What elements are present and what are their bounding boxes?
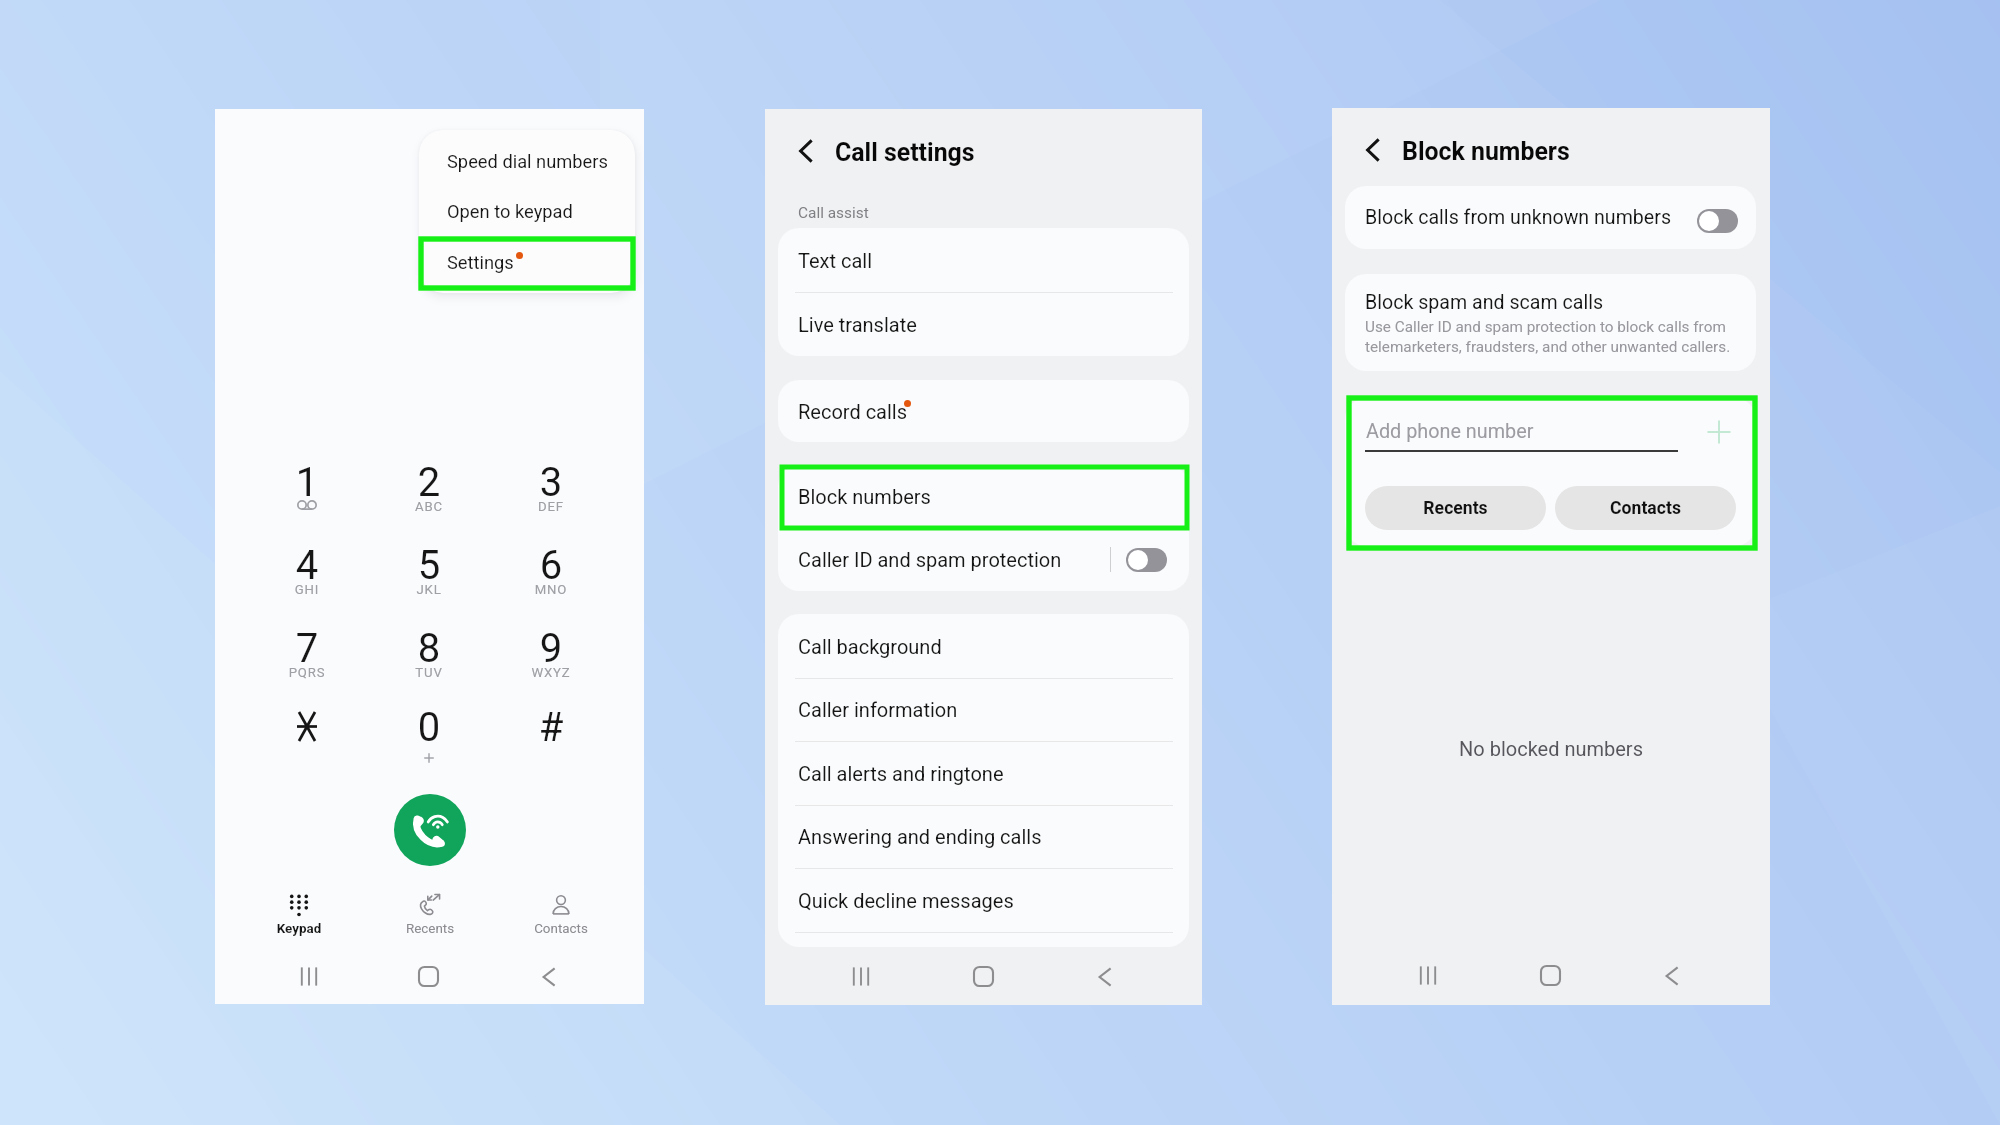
button[interactable]: Block numbers xyxy=(778,465,1189,528)
button[interactable]: Dial 0 xyxy=(373,688,485,764)
staticText: Open to keypad xyxy=(447,201,573,222)
button[interactable]: Dial 3 xyxy=(495,443,607,519)
button[interactable]: Dial 7 xyxy=(251,609,363,685)
button[interactable]: Keypad xyxy=(239,881,359,939)
button[interactable]: Record calls xyxy=(778,380,1189,442)
staticText: 0 xyxy=(384,704,474,751)
button[interactable]: Settings xyxy=(419,230,635,292)
staticText: 2 xyxy=(384,459,474,506)
button[interactable]: Text call xyxy=(778,228,1189,292)
staticText: Add phone number xyxy=(1366,420,1534,443)
staticText: 9 xyxy=(506,625,596,672)
button[interactable]: Caller information xyxy=(778,678,1189,742)
button[interactable]: Dial 5 xyxy=(373,526,485,602)
button[interactable]: Dial 9 xyxy=(495,609,607,685)
staticText: Caller ID and spam protection xyxy=(798,548,1062,571)
button[interactable]: Add xyxy=(1704,418,1736,450)
staticText: 6 xyxy=(506,542,596,589)
button[interactable]: Live translate xyxy=(778,292,1189,356)
staticText: Call assist xyxy=(798,204,869,222)
button[interactable]: Recent apps xyxy=(282,958,336,1012)
staticText: PQRS xyxy=(262,665,352,680)
staticText: Block calls from unknown numbers xyxy=(1365,206,1671,229)
staticText: 4 xyxy=(262,542,352,589)
staticText: 3 xyxy=(506,459,596,506)
staticText: ABC xyxy=(384,499,474,514)
button[interactable]: Open to keypad xyxy=(419,180,635,230)
button[interactable]: Block calls from unknown numbers xyxy=(1345,186,1756,249)
staticText: Contacts xyxy=(1610,498,1681,519)
staticText: Caller information xyxy=(798,698,958,721)
button[interactable]: Back xyxy=(783,126,841,184)
staticText: 8 xyxy=(384,625,474,672)
staticText: Settings xyxy=(447,252,514,273)
staticText: DEF xyxy=(506,499,596,514)
button[interactable]: Recent apps xyxy=(1401,957,1455,1011)
button[interactable]: Contacts xyxy=(1555,486,1736,530)
button[interactable]: Back xyxy=(522,958,576,1012)
button[interactable]: Dial 1 xyxy=(251,443,363,519)
staticText: Keypad xyxy=(239,921,359,937)
staticText: Recents xyxy=(1423,498,1488,519)
button[interactable]: Toggle xyxy=(1126,548,1167,572)
staticText: Speed dial numbers xyxy=(447,151,608,172)
staticText: Block numbers xyxy=(1402,137,1570,166)
staticText: Call alerts and ringtone xyxy=(798,762,1004,785)
button[interactable]: Dial 6 xyxy=(495,526,607,602)
staticText: GHI xyxy=(262,582,352,597)
button[interactable]: Home xyxy=(956,958,1010,1012)
staticText: Record calls xyxy=(798,400,908,423)
button[interactable]: Dial 4 xyxy=(251,526,363,602)
staticText: JKL xyxy=(384,582,474,597)
button[interactable]: Quick decline messages xyxy=(778,868,1189,932)
button[interactable]: Dial * xyxy=(251,688,363,764)
staticText: Call settings xyxy=(835,138,975,167)
staticText: 1 xyxy=(262,459,352,506)
staticText: MNO xyxy=(506,582,596,597)
staticText: # xyxy=(506,704,596,751)
button[interactable]: Back xyxy=(1078,958,1132,1012)
button[interactable]: Dial # xyxy=(495,688,607,764)
button[interactable]: Dial 2 xyxy=(373,443,485,519)
staticText: Quick decline messages xyxy=(798,889,1014,912)
button[interactable]: Dial 8 xyxy=(373,609,485,685)
button[interactable]: Block spam and scam calls xyxy=(1345,274,1756,371)
staticText: Text call xyxy=(798,249,873,272)
button[interactable]: Recents xyxy=(1365,486,1546,530)
staticText: Recents xyxy=(370,921,490,937)
button[interactable]: Toggle xyxy=(1697,209,1738,233)
staticText: Answering and ending calls xyxy=(798,825,1042,848)
button[interactable]: Answering and ending calls xyxy=(778,805,1189,869)
staticText: TUV xyxy=(384,665,474,680)
staticText: Call background xyxy=(798,635,942,658)
staticText: Use Caller ID and spam protection to blo… xyxy=(1365,318,1735,356)
button[interactable]: Back xyxy=(1645,957,1699,1011)
button[interactable]: Home xyxy=(402,958,456,1012)
button[interactable]: Recents xyxy=(370,881,490,939)
staticText: Contacts xyxy=(501,921,621,937)
button[interactable]: Speed dial numbers xyxy=(419,130,635,180)
button[interactable]: Call xyxy=(394,794,466,866)
button[interactable]: Home xyxy=(1523,957,1577,1011)
staticText: Live translate xyxy=(798,313,917,336)
staticText: Block spam and scam calls xyxy=(1365,291,1604,314)
button[interactable]: Recent apps xyxy=(834,958,888,1012)
button[interactable]: Back xyxy=(1350,125,1408,183)
staticText: 7 xyxy=(262,625,352,672)
staticText: Block numbers xyxy=(798,485,931,508)
button[interactable]: Call background xyxy=(778,614,1189,678)
button[interactable]: Call alerts and ringtone xyxy=(778,741,1189,805)
button[interactable]: Contacts xyxy=(501,881,621,939)
staticText: 5 xyxy=(384,542,474,589)
staticText: No blocked numbers xyxy=(1332,737,1770,760)
button[interactable]: Caller ID and spam protection xyxy=(778,528,1189,591)
staticText: WXYZ xyxy=(506,665,596,680)
